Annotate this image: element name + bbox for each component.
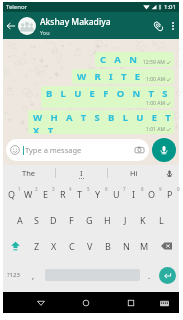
button[interactable]: B — [99, 233, 117, 259]
staticText: F — [69, 214, 74, 226]
staticText: D — [50, 214, 57, 226]
button[interactable]: Type a message — [6, 139, 149, 161]
button[interactable]: D — [45, 207, 62, 233]
button[interactable]: 0 — [161, 181, 179, 207]
button[interactable]: 6 — [89, 181, 107, 207]
staticText: X — [51, 240, 57, 252]
staticText: 1:00 AM — [146, 100, 165, 107]
button[interactable]: H — [98, 207, 116, 233]
staticText: J — [124, 214, 127, 226]
staticText: . — [148, 270, 151, 281]
button[interactable]: ?123 — [3, 259, 23, 291]
staticText: U — [113, 188, 120, 200]
button[interactable]: 7 — [107, 181, 125, 207]
button[interactable]: Group photo — [18, 17, 36, 35]
button[interactable]: Attach — [150, 12, 166, 39]
staticText: P — [167, 188, 173, 200]
button[interactable]: I — [56, 165, 107, 181]
staticText: Q — [8, 188, 16, 200]
button[interactable]: . — [142, 259, 156, 291]
button[interactable]: Shift — [3, 233, 28, 259]
button[interactable]: X — [45, 233, 63, 259]
button[interactable]: A — [11, 207, 28, 233]
button[interactable]: V — [81, 233, 99, 259]
staticText: T — [77, 188, 83, 200]
staticText: I — [132, 188, 136, 200]
button[interactable]: The — [3, 165, 55, 181]
button[interactable]: G — [80, 207, 98, 233]
staticText: R — [60, 188, 66, 200]
button[interactable]: Back — [3, 12, 18, 39]
staticText: B L U E F O N T S — [46, 87, 171, 100]
button[interactable]: C A N — [95, 52, 174, 67]
button[interactable]: J — [116, 207, 134, 233]
button[interactable]: F — [62, 207, 80, 233]
staticText: ?123 — [7, 271, 20, 279]
button[interactable]: B L U E F O N T S — [41, 86, 174, 108]
button[interactable]: N — [117, 233, 135, 259]
staticText: O — [148, 188, 156, 200]
staticText: 1 — [18, 186, 21, 192]
staticText: S — [34, 214, 39, 226]
staticText: W — [24, 188, 33, 200]
staticText: 5 — [87, 186, 90, 192]
button[interactable]: 3 — [37, 181, 54, 207]
staticText: Z — [34, 240, 40, 252]
button[interactable]: Recents — [122, 294, 140, 312]
button[interactable]: , — [23, 259, 43, 291]
staticText: 9 — [159, 186, 162, 192]
staticText: X T — [33, 124, 57, 133]
button[interactable]: W R I T E — [72, 69, 174, 84]
button[interactable]: 2 — [20, 181, 37, 207]
button[interactable]: More options — [166, 12, 179, 39]
staticText: B — [105, 240, 111, 252]
staticText: M — [140, 240, 149, 252]
staticText: , — [32, 270, 35, 281]
staticText: 7 — [123, 186, 126, 192]
staticText: Akshay Makadiya — [40, 16, 111, 28]
button[interactable]: Keyboard — [156, 295, 172, 311]
button[interactable]: Hi — [108, 165, 159, 181]
staticText: 1:01 AM — [146, 126, 165, 133]
staticText: 3 — [52, 186, 55, 192]
staticText: Telenor — [6, 3, 28, 11]
staticText: C — [69, 240, 75, 252]
staticText: 4 — [69, 186, 72, 192]
button[interactable]: Z — [28, 233, 45, 259]
staticText: 12:59 AM — [143, 59, 165, 66]
staticText: K — [140, 214, 146, 226]
button[interactable]: Backspace — [153, 233, 179, 259]
staticText: Type a message — [25, 145, 82, 155]
button[interactable]: Voice input — [159, 165, 179, 181]
staticText: I — [80, 168, 83, 178]
staticText: 8 — [141, 186, 144, 192]
staticText: 6 — [105, 186, 108, 192]
button[interactable]: 4 — [54, 181, 71, 207]
button[interactable]: Voice message — [152, 138, 176, 162]
staticText: W R I T E — [77, 70, 143, 83]
staticText: H — [104, 214, 111, 226]
button[interactable]: M — [135, 233, 153, 259]
button[interactable]: Back — [32, 294, 50, 312]
staticText: A — [17, 214, 23, 226]
button[interactable]: S — [28, 207, 45, 233]
button[interactable]: 1 — [3, 181, 20, 207]
staticText: V — [87, 240, 93, 252]
staticText: W H A T S B L U E T E — [33, 111, 171, 124]
staticText: L — [159, 214, 164, 226]
button[interactable]: Enter — [156, 259, 179, 291]
staticText: 0 — [177, 186, 180, 192]
button[interactable]: W H A T S B L U E T E — [28, 110, 174, 134]
button[interactable]: 9 — [143, 181, 161, 207]
button[interactable]: 5 — [71, 181, 89, 207]
button[interactable]: 8 — [125, 181, 143, 207]
button[interactable]: Home — [77, 294, 95, 312]
button[interactable]: K — [134, 207, 152, 233]
button[interactable]: L — [152, 207, 170, 233]
staticText: You — [40, 29, 50, 36]
staticText: G — [86, 214, 93, 226]
staticText: 2 — [35, 186, 38, 192]
staticText: N — [123, 240, 130, 252]
button[interactable]: C — [63, 233, 81, 259]
